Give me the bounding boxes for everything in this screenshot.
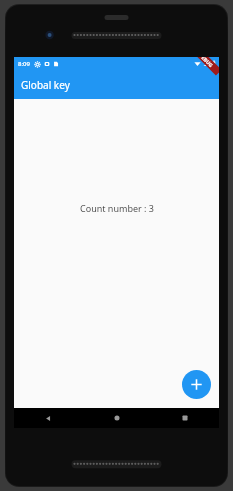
button[interactable]: Home <box>83 408 151 428</box>
staticText: 8:09 <box>18 60 30 68</box>
button[interactable]: Back <box>14 408 83 428</box>
staticText: DEBUG <box>197 57 214 69</box>
staticText: Count number : 3 <box>80 202 154 214</box>
button[interactable]: Recent apps <box>151 408 219 428</box>
staticText: Global key <box>21 78 70 92</box>
button[interactable]: Increment counter <box>182 370 211 399</box>
